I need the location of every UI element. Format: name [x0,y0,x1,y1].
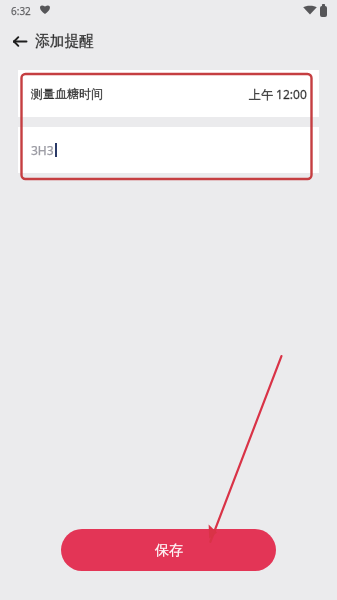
button[interactable]: 3H3 [18,127,319,173]
staticText: 上午 12:00 [249,86,307,102]
staticText: 6:32 [11,4,31,18]
staticText: 添加提醒 [35,32,94,51]
button[interactable]: Back [2,24,38,58]
button[interactable]: 测量血糖时间 [18,70,319,117]
staticText: 3H3 [31,142,54,158]
staticText: 6:32 [11,4,31,18]
staticText: 添加提醒 [35,32,94,51]
other: Battery [320,4,327,17]
staticText: 测量血糖时间 [31,86,103,101]
staticText: 保存 [155,542,183,560]
staticText: 测量血糖时间 [31,86,103,101]
other: Wi-Fi [303,4,317,15]
button[interactable]: 保存 [61,529,276,571]
staticText: 3H3 [31,142,54,158]
staticText: 上午 12:00 [249,86,307,102]
